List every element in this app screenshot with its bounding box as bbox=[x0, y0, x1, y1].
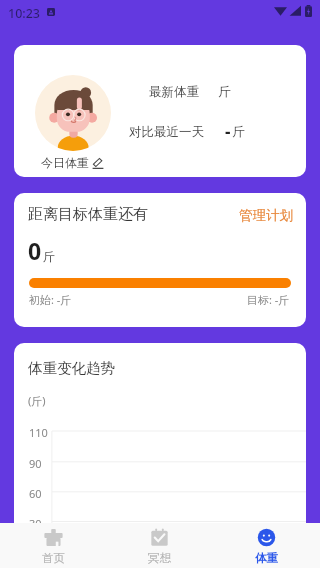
staticText: 距离目标体重还有 bbox=[28, 205, 148, 224]
staticText: 110 bbox=[29, 425, 48, 440]
staticText: 对比最近一天 bbox=[129, 124, 204, 140]
staticText: - bbox=[225, 120, 231, 143]
staticText: 斤 bbox=[232, 124, 245, 140]
staticText: 斤 bbox=[218, 84, 231, 100]
staticText: 首页 bbox=[42, 551, 65, 565]
button[interactable]: 体重 bbox=[213, 523, 320, 568]
button[interactable]: 首页 bbox=[0, 523, 106, 568]
staticText: 斤 bbox=[43, 249, 55, 264]
staticText: 90 bbox=[29, 456, 42, 471]
staticText: 0 bbox=[28, 235, 42, 266]
staticText: 初始: -斤 bbox=[29, 292, 72, 307]
staticText: 目标: -斤 bbox=[247, 292, 290, 307]
staticText: 30 bbox=[29, 516, 42, 523]
staticText: 体重变化趋势 bbox=[28, 359, 115, 377]
staticText: 今日体重 bbox=[41, 155, 89, 170]
staticText: 最新体重 bbox=[149, 84, 199, 100]
staticText: 冥想 bbox=[148, 551, 171, 565]
button[interactable]: 今日体重 bbox=[41, 155, 104, 170]
staticText: (斤) bbox=[28, 393, 46, 408]
staticText: 体重 bbox=[255, 551, 278, 565]
button[interactable]: 冥想 bbox=[106, 523, 213, 568]
staticText: 10:23 bbox=[8, 5, 41, 22]
button[interactable]: 管理计划 bbox=[237, 206, 295, 225]
staticText: 管理计划 bbox=[239, 207, 293, 224]
staticText: 60 bbox=[29, 486, 42, 501]
